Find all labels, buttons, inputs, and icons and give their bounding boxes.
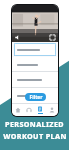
staticText: PERSONALIZED bbox=[5, 119, 64, 129]
button[interactable]: Home bbox=[12, 104, 23, 116]
button[interactable] bbox=[12, 72, 58, 88]
button[interactable]: Fullscreen bbox=[49, 34, 56, 41]
staticText: Filter bbox=[29, 94, 43, 101]
button[interactable] bbox=[14, 43, 56, 56]
staticText: WORKOUT PLAN bbox=[3, 131, 67, 141]
button[interactable]: Profile bbox=[46, 104, 58, 116]
button[interactable] bbox=[12, 88, 58, 104]
button[interactable]: Filter bbox=[25, 93, 46, 101]
button[interactable]: Workouts bbox=[23, 104, 34, 116]
button[interactable]: Plan bbox=[34, 104, 46, 116]
button[interactable] bbox=[12, 57, 58, 72]
button[interactable]: Mute bbox=[14, 34, 21, 41]
